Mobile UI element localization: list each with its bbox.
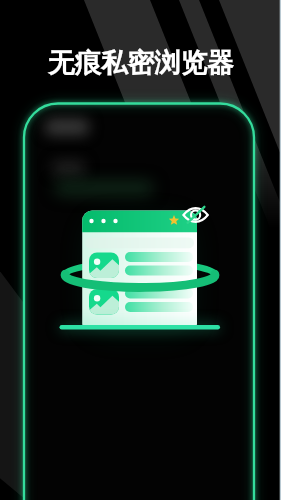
staticText: 无痕私密浏览器	[48, 46, 234, 79]
button[interactable]: 无痕私密浏览器	[0, 0, 281, 500]
